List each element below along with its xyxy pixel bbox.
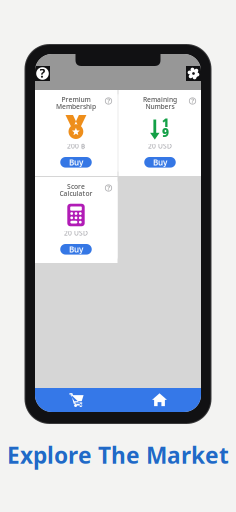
button[interactable]: Help (35, 66, 50, 81)
staticText: 20 USD (148, 142, 172, 150)
button[interactable]: Buy (144, 157, 176, 168)
button[interactable]: Info (104, 97, 112, 105)
staticText: 200 ฿ (67, 142, 85, 150)
button[interactable]: Buy (60, 157, 92, 168)
staticText: Buy (153, 157, 167, 168)
staticText: 1 (162, 115, 169, 131)
staticText: Buy (69, 244, 83, 255)
staticText: ? (39, 65, 45, 81)
staticText: ? (107, 183, 110, 192)
staticText: Numbers (145, 102, 174, 111)
staticText: Calculator (59, 189, 92, 198)
staticText: Score (67, 182, 85, 191)
button[interactable]: Info (188, 97, 196, 105)
staticText: Explore The Market (7, 440, 229, 470)
staticText: 9 (162, 124, 169, 140)
staticText: Remaining (143, 95, 177, 104)
button[interactable]: Info (104, 184, 112, 192)
button[interactable]: Settings (186, 66, 201, 81)
button[interactable]: Market (35, 388, 118, 412)
staticText: Premium (61, 95, 90, 104)
staticText: ? (191, 96, 194, 105)
staticText: Membership (56, 102, 96, 111)
button[interactable]: Home (118, 388, 201, 412)
staticText: 20 USD (64, 229, 88, 237)
staticText: Buy (69, 157, 83, 168)
button[interactable]: Buy (60, 244, 92, 255)
staticText: ? (107, 96, 110, 105)
